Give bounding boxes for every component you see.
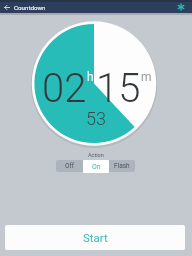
staticText: Off	[65, 162, 74, 170]
button[interactable]	[178, 3, 186, 11]
staticText: h	[87, 70, 94, 84]
staticText: On	[92, 163, 101, 171]
button[interactable]: On	[83, 160, 109, 173]
staticText: 02	[42, 65, 87, 112]
staticText: Flash	[114, 162, 130, 170]
staticText: Start	[83, 231, 108, 244]
button[interactable]	[4, 4, 10, 10]
staticText: 53	[86, 108, 106, 129]
staticText: Countdown	[14, 4, 46, 11]
button[interactable]: Flash	[109, 160, 135, 172]
staticText: Action	[88, 152, 104, 158]
staticText: m	[141, 70, 152, 84]
staticText: 15	[96, 65, 141, 112]
button[interactable]: Off	[56, 160, 83, 172]
button[interactable]: Start	[5, 225, 185, 250]
